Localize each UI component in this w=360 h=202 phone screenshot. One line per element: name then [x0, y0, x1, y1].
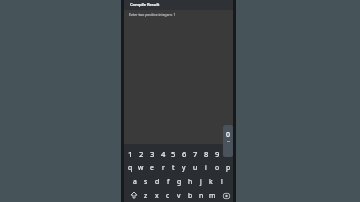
- staticText: w: [138, 163, 144, 172]
- button[interactable]: s: [140, 175, 152, 187]
- button[interactable]: [221, 191, 231, 201]
- button[interactable]: r: [157, 161, 169, 173]
- staticText: t: [172, 163, 175, 172]
- staticText: s: [144, 177, 148, 186]
- button[interactable]: 3: [146, 148, 158, 160]
- staticText: f: [167, 177, 170, 186]
- staticText: 3: [150, 149, 155, 159]
- button[interactable]: e: [146, 161, 158, 173]
- button[interactable]: c: [162, 189, 174, 201]
- staticText: x: [155, 191, 159, 200]
- button[interactable]: [129, 190, 139, 200]
- button[interactable]: u: [189, 161, 201, 173]
- staticText: c: [166, 191, 170, 200]
- staticText: k: [209, 177, 213, 186]
- button[interactable]: l: [216, 175, 228, 187]
- button[interactable]: 1: [124, 148, 136, 160]
- button[interactable]: n: [195, 189, 207, 201]
- staticText: o: [215, 163, 220, 172]
- staticText: 5: [171, 149, 176, 159]
- staticText: Enter two positive integers: 1: [129, 12, 176, 17]
- button[interactable]: g: [173, 175, 185, 187]
- button[interactable]: 0: [222, 148, 234, 160]
- button[interactable]: k: [205, 175, 217, 187]
- button[interactable]: h: [184, 175, 196, 187]
- button[interactable]: z: [140, 189, 152, 201]
- staticText: g: [177, 177, 182, 186]
- button[interactable]: 4: [157, 148, 169, 160]
- staticText: 7: [193, 149, 198, 159]
- button[interactable]: 2: [135, 148, 147, 160]
- button[interactable]: w: [135, 161, 147, 173]
- staticText: a: [133, 177, 137, 186]
- staticText: m: [209, 191, 216, 200]
- button[interactable]: 5: [167, 148, 179, 160]
- staticText: d: [155, 177, 160, 186]
- button[interactable]: b: [184, 189, 196, 201]
- button[interactable]: p: [222, 161, 234, 173]
- staticText: 8: [204, 149, 209, 159]
- button[interactable]: t: [167, 161, 179, 173]
- staticText: j: [200, 177, 202, 186]
- button[interactable]: q: [124, 161, 136, 173]
- staticText: r: [162, 163, 165, 172]
- staticText: v: [177, 191, 181, 200]
- button[interactable]: 0: [223, 125, 233, 157]
- staticText: h: [188, 177, 193, 186]
- staticText: z: [144, 191, 148, 200]
- staticText: l: [221, 177, 223, 186]
- staticText: Compile Result: [130, 2, 160, 8]
- staticText: 1: [128, 149, 133, 159]
- staticText: 4: [161, 149, 166, 159]
- button[interactable]: 9: [211, 148, 223, 160]
- staticText: u: [193, 163, 198, 172]
- staticText: q: [128, 163, 133, 172]
- staticText: 6: [182, 149, 187, 159]
- button[interactable]: 6: [178, 148, 190, 160]
- staticText: i: [205, 163, 207, 172]
- button[interactable]: Enter two positive integers: 1: [124, 10, 233, 144]
- button[interactable]: i: [200, 161, 212, 173]
- staticText: y: [182, 163, 186, 172]
- staticText: 0: [226, 130, 231, 140]
- button[interactable]: d: [151, 175, 163, 187]
- staticText: b: [188, 191, 193, 200]
- button[interactable]: 8: [200, 148, 212, 160]
- button[interactable]: v: [173, 189, 185, 201]
- button[interactable]: 7: [189, 148, 201, 160]
- button[interactable]: j: [195, 175, 207, 187]
- staticText: 9: [215, 149, 220, 159]
- button[interactable]: o: [211, 161, 223, 173]
- button[interactable]: m: [206, 189, 218, 201]
- button[interactable]: f: [162, 175, 174, 187]
- button[interactable]: a: [129, 175, 141, 187]
- staticText: p: [226, 163, 231, 172]
- button[interactable]: Compile Result: [124, 0, 233, 10]
- staticText: n: [199, 191, 204, 200]
- staticText: e: [150, 163, 154, 172]
- staticText: 0: [226, 149, 231, 159]
- staticText: 2: [139, 149, 144, 159]
- button[interactable]: x: [151, 189, 163, 201]
- button[interactable]: y: [178, 161, 190, 173]
